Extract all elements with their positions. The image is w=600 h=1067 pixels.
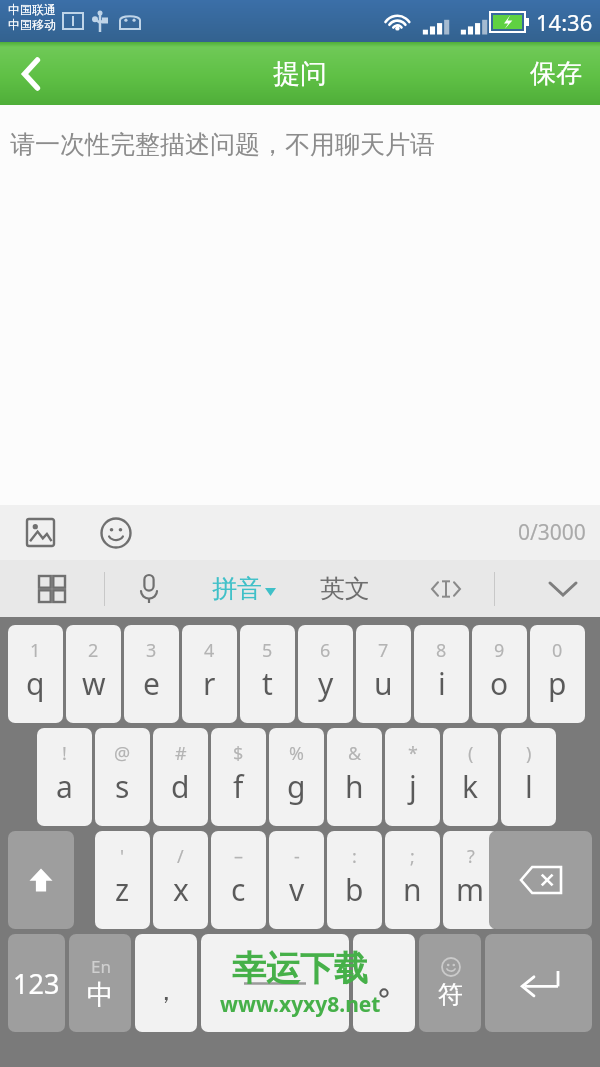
button[interactable]: 123	[8, 934, 65, 1032]
button[interactable]: Keyboard layouts	[16, 560, 88, 617]
button[interactable]: 6	[298, 625, 353, 723]
button[interactable]: –	[211, 831, 266, 929]
button[interactable]: Insert emoji	[88, 505, 144, 560]
staticText: f	[233, 766, 244, 807]
staticText: y	[318, 663, 334, 704]
staticText: ;	[410, 844, 415, 869]
button[interactable]: #	[153, 728, 208, 826]
button[interactable]: 保存	[512, 42, 600, 105]
staticText: 14:36	[536, 7, 593, 37]
button[interactable]: Space	[201, 934, 349, 1032]
staticText: c	[231, 869, 246, 910]
button[interactable]: '	[95, 831, 150, 929]
staticText: En	[91, 955, 111, 978]
button[interactable]: )	[501, 728, 556, 826]
button[interactable]: !	[37, 728, 92, 826]
staticText: 提问	[273, 57, 327, 91]
button[interactable]: 5	[240, 625, 295, 723]
button[interactable]: *	[385, 728, 440, 826]
button[interactable]: @	[95, 728, 150, 826]
staticText: *	[408, 741, 418, 766]
staticText: !	[62, 741, 67, 766]
button[interactable]: ;	[385, 831, 440, 929]
button[interactable]: Backspace	[489, 831, 592, 929]
staticText: –	[234, 844, 243, 869]
staticText: 幸运下载	[232, 947, 368, 990]
staticText: 4	[204, 638, 215, 663]
button[interactable]: 英文	[312, 560, 378, 617]
staticText: 请一次性完整描述问题，不用聊天片语	[10, 129, 435, 160]
staticText: :	[352, 844, 357, 869]
staticText: 中	[87, 978, 114, 1012]
staticText: t	[262, 663, 273, 704]
button[interactable]: 8	[414, 625, 469, 723]
button[interactable]: En	[69, 934, 131, 1032]
staticText: d	[171, 766, 190, 807]
button[interactable]: 3	[124, 625, 179, 723]
button[interactable]: Back	[0, 42, 62, 105]
staticText: g	[287, 766, 306, 807]
staticText: /	[177, 844, 184, 869]
staticText: s	[115, 766, 130, 807]
staticText: r	[203, 663, 216, 704]
button[interactable]	[353, 934, 415, 1032]
button[interactable]: 1	[8, 625, 63, 723]
staticText: z	[115, 869, 130, 910]
button[interactable]: 拼音	[208, 560, 280, 617]
button[interactable]: ，	[135, 934, 197, 1032]
staticText: x	[173, 869, 189, 910]
staticText: w	[82, 663, 106, 704]
staticText: #	[175, 741, 187, 766]
staticText: a	[56, 766, 73, 807]
button[interactable]: &	[327, 728, 382, 826]
button[interactable]: Hide keyboard	[526, 560, 600, 617]
staticText: 保存	[530, 57, 582, 90]
staticText: 7	[378, 638, 389, 663]
staticText: n	[403, 869, 422, 910]
button[interactable]: Move cursor	[414, 560, 478, 617]
staticText: v	[289, 869, 305, 910]
button[interactable]: %	[269, 728, 324, 826]
staticText: e	[143, 663, 160, 704]
staticText: 中国联通	[8, 2, 56, 17]
staticText: 6	[320, 638, 331, 663]
staticText: i	[438, 663, 446, 704]
staticText: 中国移动	[8, 17, 56, 32]
staticText: ，	[153, 975, 179, 1008]
staticText: %	[289, 741, 304, 766]
staticText: p	[548, 663, 567, 704]
button[interactable]: -	[269, 831, 324, 929]
button[interactable]: 9	[472, 625, 527, 723]
button[interactable]: Enter	[485, 934, 592, 1032]
button[interactable]: 0	[530, 625, 585, 723]
staticText: www.xyxy8.net	[220, 990, 381, 1019]
staticText: &	[348, 741, 362, 766]
staticText: 123	[13, 965, 60, 1002]
button[interactable]: Voice input	[118, 560, 180, 617]
staticText: q	[26, 663, 45, 704]
staticText: h	[345, 766, 364, 807]
button[interactable]: ?	[443, 831, 498, 929]
button[interactable]: Shift	[8, 831, 74, 929]
button[interactable]: 7	[356, 625, 411, 723]
staticText: 9	[494, 638, 505, 663]
staticText: $	[233, 741, 244, 766]
staticText: 拼音	[212, 573, 262, 604]
staticText: 0	[552, 638, 563, 663]
staticText: o	[490, 663, 509, 704]
staticText: '	[120, 844, 125, 869]
staticText: 0/3000	[518, 518, 586, 547]
button[interactable]: 2	[66, 625, 121, 723]
button[interactable]: $	[211, 728, 266, 826]
staticText: b	[345, 869, 364, 910]
button[interactable]: /	[153, 831, 208, 929]
button[interactable]: 符	[419, 934, 481, 1032]
staticText: (	[468, 741, 474, 766]
staticText: 5	[262, 638, 273, 663]
staticText: )	[526, 741, 532, 766]
button[interactable]: Add image	[12, 505, 68, 560]
staticText: m	[456, 869, 485, 910]
button[interactable]: 4	[182, 625, 237, 723]
button[interactable]: :	[327, 831, 382, 929]
button[interactable]: (	[443, 728, 498, 826]
